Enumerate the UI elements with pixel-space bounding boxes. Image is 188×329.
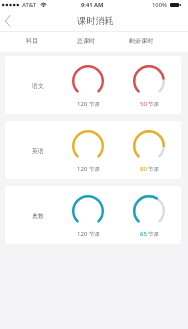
staticText: 80 — [140, 165, 147, 173]
staticText: 65 — [140, 230, 147, 238]
staticText: 剩余课时 — [111, 37, 171, 45]
staticText: 50 — [140, 100, 147, 108]
staticText: AT&T — [22, 1, 37, 9]
staticText: 课时消耗 — [77, 15, 114, 27]
staticText: 英语 — [13, 147, 63, 154]
staticText: 节课 — [148, 166, 159, 173]
staticText: 120 — [77, 230, 88, 238]
button[interactable]: Back — [0, 13, 15, 29]
staticText: 总课时 — [56, 37, 116, 45]
button[interactable]: 英语 — [5, 121, 181, 179]
staticText: 9:41 AM — [81, 1, 104, 9]
staticText: 语文 — [13, 82, 63, 89]
staticText: 科目 — [2, 37, 62, 45]
staticText: 节课 — [89, 231, 100, 238]
staticText: 120 — [77, 165, 88, 173]
staticText: 奥数 — [13, 212, 63, 219]
staticText: 120 — [77, 100, 88, 108]
button[interactable]: 奥数 — [5, 186, 181, 244]
staticText: 节课 — [89, 166, 100, 173]
staticText: 100% — [152, 1, 167, 9]
staticText: 节课 — [148, 231, 159, 238]
staticText: 节课 — [89, 101, 100, 108]
staticText: 节课 — [148, 101, 159, 108]
button[interactable]: 语文 — [5, 56, 181, 114]
